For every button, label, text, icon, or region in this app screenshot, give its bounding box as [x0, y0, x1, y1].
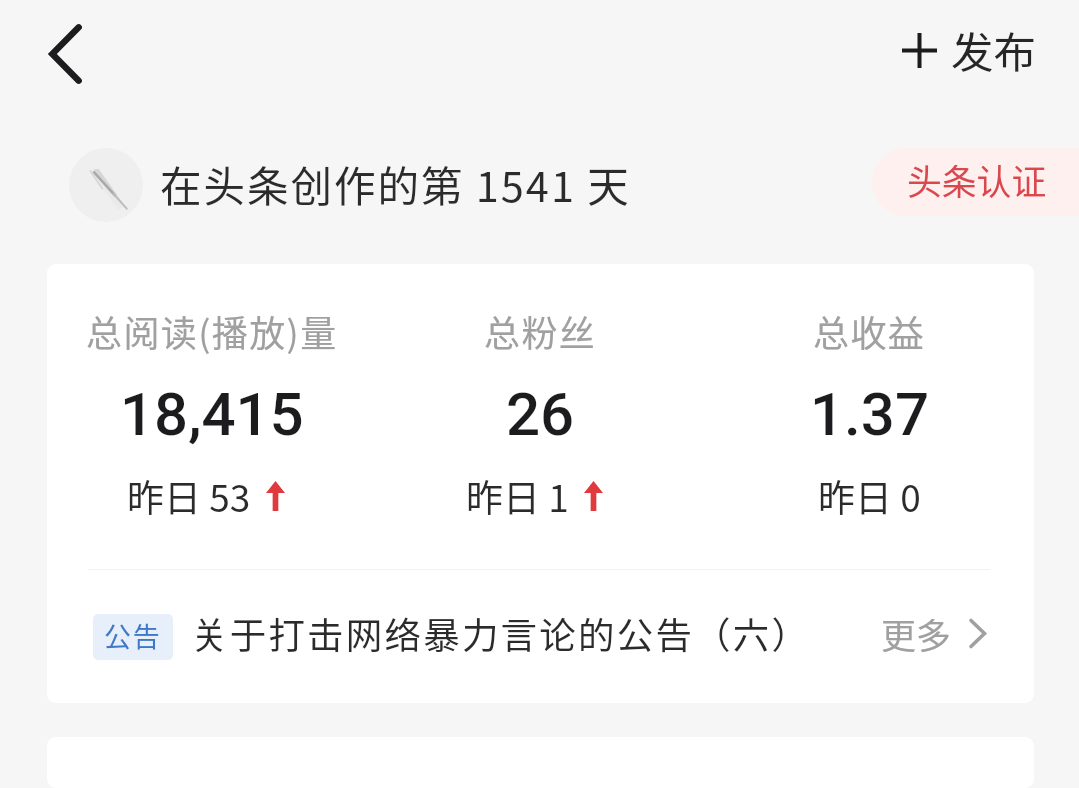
staticText: 1.37 — [810, 379, 930, 449]
staticText: 昨日 1 — [466, 469, 569, 523]
staticText: 18,415 — [120, 379, 304, 449]
staticText: 在头条创作的第 1541 天 — [160, 154, 631, 214]
staticText: 发布 — [951, 19, 1037, 81]
button[interactable]: 总粉丝 — [376, 305, 705, 523]
button[interactable]: 公告 — [47, 567, 1034, 700]
button[interactable]: 发布 — [902, 19, 1037, 81]
button[interactable]: 在头条创作的第 1541 天 — [160, 154, 631, 214]
button[interactable]: Profile avatar — [69, 148, 143, 222]
staticText: 总收益 — [813, 305, 926, 357]
button[interactable]: 总阅读(播放)量 — [47, 305, 376, 523]
staticText: 总阅读(播放)量 — [86, 305, 338, 357]
button[interactable]: Back — [29, 18, 101, 90]
staticText: 头条认证 — [907, 155, 1047, 205]
button[interactable]: 总收益 — [705, 305, 1034, 523]
button[interactable]: 更多 — [881, 608, 1034, 659]
staticText: 昨日 0 — [818, 469, 921, 523]
staticText: 关于打击网络暴力言论的公告（六） — [191, 607, 811, 660]
staticText: 总粉丝 — [484, 305, 597, 357]
staticText: 公告 — [104, 616, 162, 655]
staticText: 昨日 53 — [127, 469, 251, 523]
staticText: 26 — [506, 379, 575, 449]
button[interactable]: 头条认证 — [872, 148, 1079, 216]
staticText: 更多 — [881, 608, 952, 659]
